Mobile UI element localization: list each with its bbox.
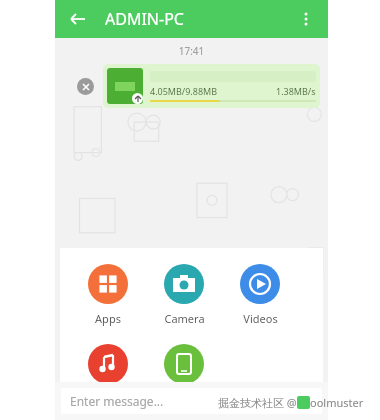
button[interactable]: Files — [146, 340, 222, 410]
staticText: 17:41 — [55, 44, 328, 58]
button[interactable]: 4.05MB/9.88MB — [103, 64, 320, 108]
staticText: 4.05MB/9.88MB — [150, 85, 218, 97]
button[interactable]: Music — [70, 340, 146, 410]
button[interactable]: Camera — [146, 260, 222, 330]
staticText: 1.38MB/s — [276, 85, 316, 97]
staticText: 掘金技术社区 @ — [218, 395, 297, 410]
button[interactable]: Back — [63, 5, 91, 33]
staticText: Videos — [243, 311, 278, 326]
staticText: Apps — [95, 311, 121, 326]
button[interactable]: Cancel transfer — [77, 78, 94, 95]
button[interactable]: Enter message... — [61, 388, 322, 414]
button[interactable]: More options — [292, 5, 320, 33]
button[interactable]: Apps — [70, 260, 146, 330]
staticText: Enter message... — [70, 393, 164, 409]
staticText: oolmuster — [310, 395, 364, 410]
staticText: Camera — [164, 311, 205, 326]
staticText: ADMIN-PC — [105, 8, 184, 30]
staticText: Music — [93, 391, 124, 406]
button[interactable]: Videos — [222, 260, 298, 330]
